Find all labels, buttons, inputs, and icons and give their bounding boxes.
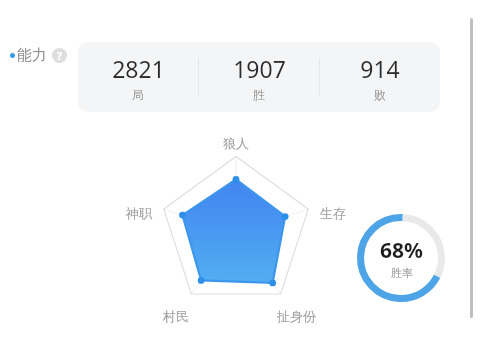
button[interactable]: 2821 <box>78 53 198 102</box>
staticText: 能力 <box>17 46 47 65</box>
staticText: 局 <box>132 87 144 102</box>
button[interactable]: 2821 <box>78 42 440 112</box>
button[interactable]: 能力 <box>10 46 67 65</box>
staticText: 神职 <box>126 205 152 221</box>
staticText: 扯身份 <box>277 308 316 324</box>
staticText: ? <box>57 49 62 63</box>
staticText: 1907 <box>233 53 286 84</box>
button[interactable]: 1907 <box>199 53 319 102</box>
staticText: 生存 <box>320 205 346 221</box>
button[interactable]: 68% <box>355 212 447 304</box>
staticText: 914 <box>360 53 400 84</box>
staticText: 胜率 <box>391 266 413 280</box>
staticText: 狼人 <box>223 135 249 151</box>
button[interactable]: 914 <box>320 53 440 102</box>
staticText: 2821 <box>112 53 165 84</box>
staticText: 败 <box>374 87 386 102</box>
staticText: 村民 <box>163 308 189 324</box>
staticText: 胜 <box>253 87 265 102</box>
button[interactable]: 帮助 <box>52 48 67 63</box>
staticText: 68% <box>380 236 423 265</box>
